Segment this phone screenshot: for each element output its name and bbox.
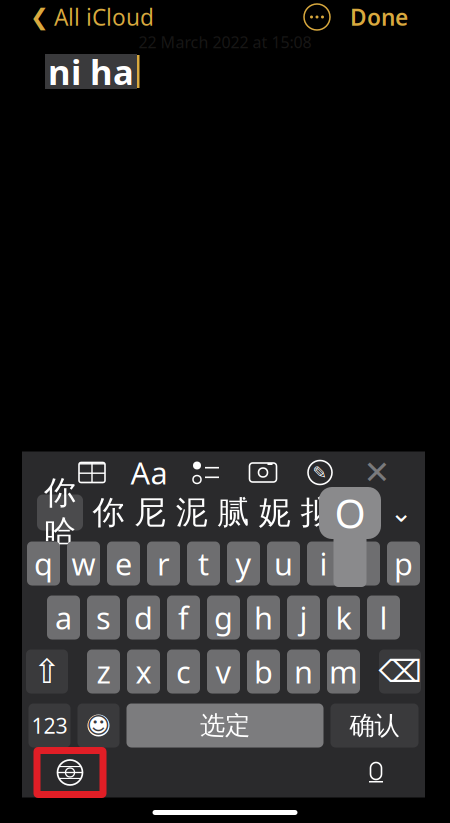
button[interactable]: l [367,595,400,639]
button[interactable]: u [267,541,300,585]
button[interactable]: p [387,541,420,585]
staticText: z [96,651,110,692]
staticText: 拟 [300,493,332,532]
button[interactable]: 你 [93,493,125,532]
staticText: s [96,597,111,638]
staticText: b [254,651,273,692]
button[interactable]: f [167,595,200,639]
staticText: 你 [93,493,125,532]
button[interactable]: v [207,649,240,693]
staticText: Aa [130,452,167,493]
staticText: n [294,651,313,692]
staticText: e [115,543,132,584]
staticText: u [274,543,293,584]
button[interactable]: 你哈 [37,494,83,530]
button[interactable]: d [127,595,160,639]
button[interactable]: c [167,649,200,693]
staticText: y [235,543,251,584]
button[interactable]: 123 [28,703,70,747]
button[interactable]: g [207,595,240,639]
staticText: 妮 [259,493,291,532]
button[interactable]: t [187,541,220,585]
button[interactable]: r [147,541,180,585]
button[interactable]: b [247,649,280,693]
button[interactable]: s [87,595,120,639]
button[interactable]: 腻 [217,493,249,532]
button[interactable]: n [287,649,320,693]
button[interactable]: w [67,541,100,585]
staticText: O [334,486,365,539]
button[interactable]: m [327,649,360,693]
staticText: All iCloud [54,2,154,32]
staticText: w [71,543,95,584]
button[interactable]: Checklist [185,455,227,489]
staticText: ✕ [363,454,390,491]
button[interactable]: Shift [26,649,68,693]
staticText: 选定 [200,710,250,741]
staticText: j [299,597,307,638]
staticText: l [379,597,387,638]
button[interactable]: j [287,595,320,639]
staticText: i [319,543,327,584]
staticText: ☺ [86,713,110,738]
staticText: t [198,543,209,584]
staticText: ⌫ [378,654,421,689]
button[interactable]: Camera [242,455,284,489]
staticText: d [134,597,153,638]
button[interactable]: 选定 [126,703,323,747]
staticText: q [34,543,53,584]
button[interactable]: Next keyboard [39,752,101,792]
button[interactable]: 拟 [300,493,332,532]
button[interactable]: i [307,541,340,585]
staticText: g [214,597,233,638]
button[interactable]: Emoji [77,703,119,747]
staticText: 腻 [217,493,249,532]
staticText: 确认 [349,710,399,741]
staticText: v [215,651,231,692]
staticText: p [394,543,413,584]
button[interactable]: Text formatting [128,455,170,489]
button[interactable]: Markup [299,455,341,489]
staticText: 你哈 [44,473,76,552]
staticText: a [55,597,72,638]
staticText: ⇧ [33,653,61,690]
button[interactable]: More candidates [388,494,414,530]
button[interactable]: Close keyboard [356,455,398,489]
staticText: h [254,597,273,638]
button[interactable]: Dictation [354,752,398,792]
staticText: Done [350,2,408,32]
button[interactable]: More options [304,4,330,30]
staticText: 尼 [134,493,166,532]
button[interactable]: ❮ [0,0,154,36]
staticText: m [329,651,358,692]
button[interactable]: k [327,595,360,639]
button[interactable]: 尼 [134,493,166,532]
button[interactable]: x [127,649,160,693]
staticText: ni ha [48,48,134,94]
staticText: 123 [31,711,67,740]
button[interactable]: Delete [379,649,421,693]
staticText: x [135,651,151,692]
staticText: f [178,597,189,638]
button[interactable]: a [47,595,80,639]
button[interactable]: 妮 [259,493,291,532]
staticText: ❮ [30,4,49,30]
button[interactable]: e [107,541,140,585]
staticText: r [157,543,170,584]
button[interactable]: h [247,595,280,639]
button[interactable]: y [227,541,260,585]
staticText: 泥 [176,493,208,532]
staticText: c [176,651,191,692]
staticText: ✎ [312,463,327,482]
staticText: 22 March 2022 at 15:08 [138,31,311,53]
button[interactable]: 泥 [176,493,208,532]
button[interactable]: 确认 [330,703,418,747]
staticText: k [335,597,351,638]
button[interactable]: Insert table [71,455,113,489]
staticText: ⌄ [390,497,412,528]
button[interactable]: Done [330,0,450,36]
button[interactable]: z [87,649,120,693]
button[interactable]: q [27,541,60,585]
